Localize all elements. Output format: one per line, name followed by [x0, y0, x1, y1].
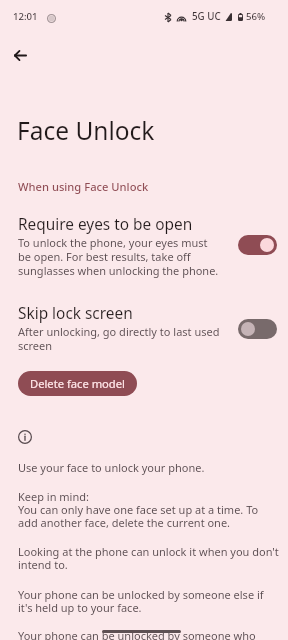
staticText: You can only have one face set up at a t…	[18, 502, 259, 517]
staticText: Use your face to unlock your phone.	[18, 460, 205, 475]
staticText: To unlock the phone, your eyes must be o…	[18, 235, 221, 278]
staticText: Skip lock screen	[18, 303, 133, 324]
staticText: add another face, delete the current one…	[18, 515, 231, 530]
staticText: Require eyes to be open	[18, 214, 193, 235]
staticText: 12:01	[13, 10, 38, 23]
staticText: 56%	[246, 10, 266, 23]
staticText: Face Unlock	[17, 114, 155, 147]
button[interactable]: Require eyes to be open	[0, 208, 288, 286]
staticText: Your phone can be unlocked by someone wh…	[18, 628, 256, 640]
button[interactable]: Toggle on	[238, 235, 277, 255]
staticText: Looking at the phone can unlock it when …	[18, 544, 279, 559]
button[interactable]: Toggle off	[238, 319, 277, 339]
staticText: it's held up to your face.	[18, 600, 142, 615]
staticText: Your phone can be unlocked by someone el…	[18, 587, 264, 602]
button[interactable]: Skip lock screen	[0, 297, 288, 357]
button[interactable]: Back	[2, 37, 38, 73]
staticText: After unlocking, go directly to last use…	[18, 324, 221, 353]
button[interactable]: Delete face model	[18, 371, 137, 396]
staticText: intend to.	[18, 557, 68, 572]
staticText: 5G UC	[192, 10, 221, 23]
staticText: Delete face model	[30, 376, 125, 391]
staticText: Keep in mind:	[18, 489, 89, 504]
staticText: When using Face Unlock	[18, 179, 149, 194]
